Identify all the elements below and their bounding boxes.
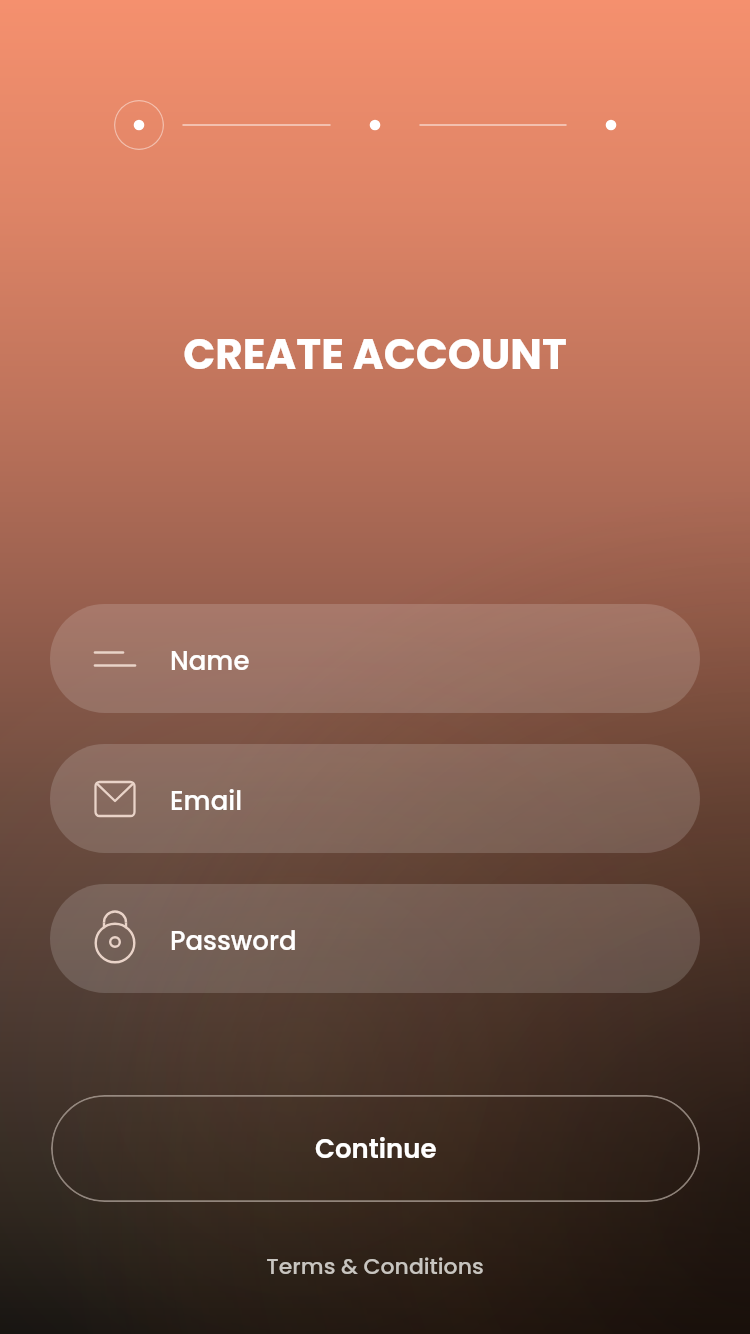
button[interactable]: Step 3 of 3 — [591, 105, 631, 145]
other: Name — [89, 633, 141, 685]
button[interactable]: Continue — [51, 1095, 700, 1202]
staticText: Name — [170, 643, 250, 679]
button[interactable]: Password — [50, 884, 700, 993]
button[interactable]: Email — [50, 744, 700, 853]
other: Password — [89, 913, 141, 965]
button[interactable]: Step 2 of 3 — [355, 105, 395, 145]
staticText: CREATE ACCOUNT — [0, 325, 750, 384]
button[interactable]: Terms & Conditions — [0, 1251, 750, 1282]
staticText: Password — [170, 923, 297, 959]
staticText: Email — [170, 783, 242, 819]
button[interactable]: Name — [50, 604, 700, 713]
staticText: Continue — [315, 1131, 437, 1167]
button[interactable]: Step 1 of 3, current — [114, 100, 164, 150]
other: Email — [89, 773, 141, 825]
